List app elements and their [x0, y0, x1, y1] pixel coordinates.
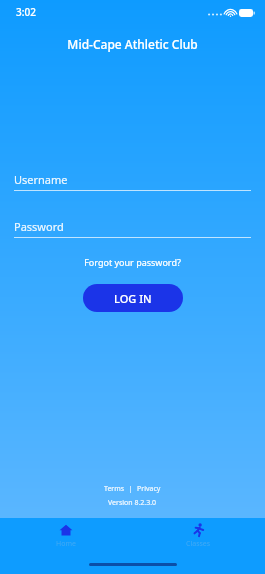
staticText: LOG IN: [114, 291, 152, 306]
button[interactable]: Username: [14, 172, 251, 191]
button[interactable]: Terms: [104, 484, 125, 494]
staticText: 3:02: [16, 5, 36, 19]
staticText: |: [125, 484, 137, 494]
staticText: Classes: [186, 539, 211, 549]
other: Home: [59, 523, 73, 537]
other: Classes: [192, 523, 206, 537]
staticText: Mid-Cape Athletic Club: [0, 36, 265, 52]
button[interactable]: Password: [14, 219, 251, 238]
button[interactable]: LOG IN: [83, 284, 183, 312]
button[interactable]: Classes: [132, 518, 265, 554]
staticText: Version 8.2.3.0: [108, 498, 157, 508]
staticText: Password: [14, 219, 64, 234]
button[interactable]: Privacy: [137, 484, 161, 494]
staticText: Home: [56, 539, 76, 549]
button[interactable]: Forgot your password?: [0, 256, 265, 268]
staticText: Username: [14, 172, 68, 187]
button[interactable]: Home: [0, 518, 132, 554]
